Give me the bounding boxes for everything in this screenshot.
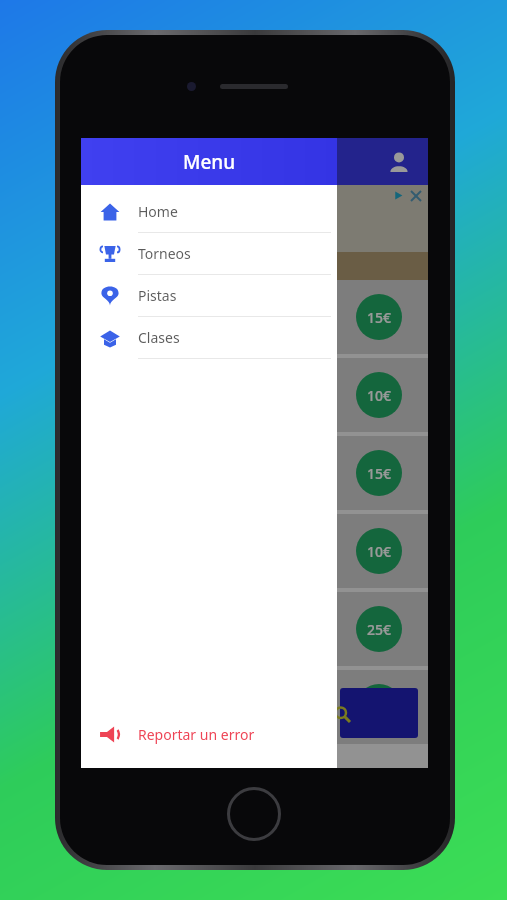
staticText: Clases: [138, 328, 180, 347]
staticText: 10€: [367, 386, 392, 405]
button[interactable]: 15€: [81, 670, 428, 744]
button[interactable]: Pistas: [81, 275, 337, 316]
staticText: Menu: [183, 149, 236, 175]
staticText: Torneos: [138, 244, 191, 263]
button[interactable]: Reportar un error: [81, 708, 337, 760]
button[interactable]: Torneos: [81, 233, 337, 274]
button[interactable]: Home: [81, 191, 337, 232]
staticText: 10€: [367, 542, 392, 561]
button[interactable]: 15€: [81, 436, 428, 510]
button[interactable]: Search: [340, 688, 418, 738]
staticText: Pistas: [138, 286, 177, 305]
staticText: Menu: [228, 149, 281, 175]
button[interactable]: Clases: [81, 317, 337, 358]
staticText: OFERTAS: [130, 221, 182, 237]
staticText: Home: [138, 202, 178, 221]
button[interactable]: 10€: [81, 358, 428, 432]
button[interactable]: 15€: [81, 280, 428, 354]
staticText: Reportar un error: [138, 725, 255, 744]
button[interactable]: 25€: [81, 592, 428, 666]
staticText: 15€: [367, 464, 392, 483]
button[interactable]: 10€: [81, 514, 428, 588]
staticText: 15€: [367, 308, 392, 327]
staticText: 25€: [367, 620, 392, 639]
button[interactable]: Profile: [382, 145, 416, 179]
